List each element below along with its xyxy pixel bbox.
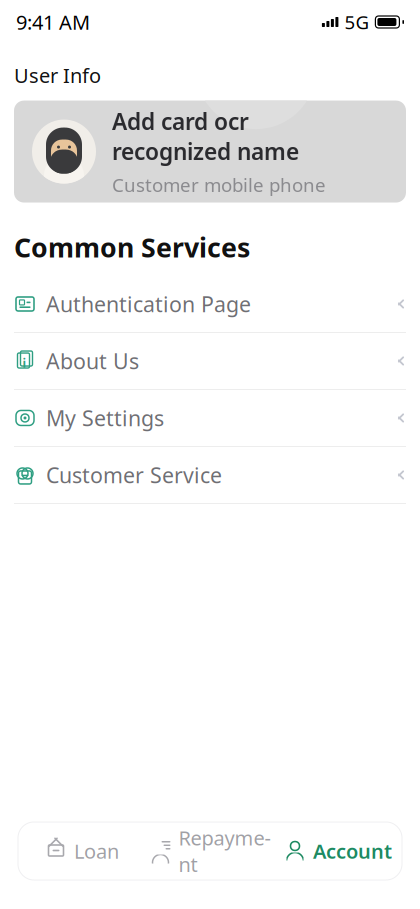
- staticText: User Info: [14, 62, 101, 89]
- staticText: Repayment: [178, 824, 270, 877]
- staticText: About Us: [46, 347, 139, 375]
- staticText: Account: [313, 838, 392, 864]
- button[interactable]: Account: [274, 822, 402, 880]
- button[interactable]: Add card ocr recognized name: [14, 101, 406, 203]
- button[interactable]: Authentication Page: [0, 276, 420, 332]
- button[interactable]: Loan: [18, 822, 146, 880]
- staticText: 9:41 AM: [16, 9, 90, 35]
- button[interactable]: My Settings: [0, 390, 420, 446]
- button[interactable]: Customer Service: [0, 447, 420, 503]
- staticText: Customer Service: [46, 461, 222, 489]
- staticText: Loan: [74, 838, 119, 864]
- staticText: Common Services: [14, 230, 250, 265]
- staticText: Authentication Page: [46, 290, 251, 318]
- staticText: Add card ocr recognized name: [112, 106, 299, 166]
- staticText: Customer mobile phone: [112, 172, 326, 197]
- staticText: i: [22, 355, 26, 371]
- button[interactable]: Repayment: [146, 822, 274, 880]
- staticText: 5G: [344, 10, 369, 34]
- staticText: My Settings: [46, 404, 164, 432]
- button[interactable]: i: [0, 333, 420, 389]
